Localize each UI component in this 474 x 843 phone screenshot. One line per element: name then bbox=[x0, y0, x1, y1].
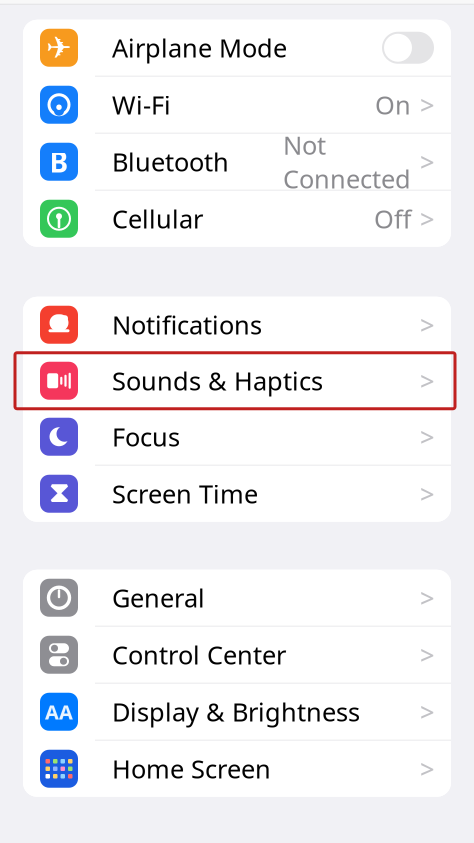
staticText: Sounds & Haptics bbox=[112, 364, 323, 397]
staticText: Bluetooth bbox=[112, 145, 229, 178]
button[interactable]: ⧗ bbox=[23, 466, 451, 522]
staticText: On bbox=[375, 88, 411, 121]
staticText: ✈ bbox=[46, 30, 72, 65]
staticText: > bbox=[420, 695, 434, 728]
staticText: Not Connected bbox=[283, 128, 411, 195]
staticText: AA bbox=[45, 698, 73, 725]
button[interactable]: Cellular bbox=[23, 191, 451, 247]
button[interactable]: Focus bbox=[23, 409, 451, 466]
button[interactable]: General bbox=[23, 570, 451, 627]
staticText: > bbox=[420, 638, 434, 671]
staticText: > bbox=[420, 88, 434, 121]
staticText: > bbox=[420, 752, 434, 785]
button[interactable]: Wi-Fi bbox=[23, 77, 451, 134]
staticText: Display & Brightness bbox=[112, 695, 360, 728]
staticText: > bbox=[420, 581, 434, 614]
staticText: Wi-Fi bbox=[112, 88, 171, 121]
staticText: Notifications bbox=[112, 308, 262, 341]
staticText: Home Screen bbox=[112, 752, 271, 785]
staticText: Focus bbox=[112, 420, 180, 453]
staticText: > bbox=[420, 420, 434, 453]
button[interactable]: Home Screen bbox=[23, 741, 451, 797]
button[interactable]: Notifications bbox=[23, 297, 451, 353]
staticText: > bbox=[420, 477, 434, 510]
button[interactable]: Control Center bbox=[23, 627, 451, 684]
button[interactable]: Sounds & Haptics bbox=[23, 353, 451, 409]
button[interactable]: B bbox=[23, 134, 451, 191]
staticText: Control Center bbox=[112, 638, 286, 671]
staticText: > bbox=[420, 145, 434, 178]
staticText: ⧗ bbox=[49, 480, 69, 507]
staticText: Airplane Mode bbox=[112, 31, 287, 64]
staticText: B bbox=[49, 143, 68, 180]
staticText: > bbox=[420, 364, 434, 397]
staticText: Off bbox=[374, 202, 411, 235]
staticText: General bbox=[112, 581, 205, 614]
staticText: > bbox=[420, 202, 434, 235]
button[interactable]: ✈ bbox=[23, 20, 451, 77]
button[interactable]: AA bbox=[23, 684, 451, 741]
staticText: > bbox=[420, 308, 434, 341]
staticText: Cellular bbox=[112, 202, 203, 235]
staticText: Screen Time bbox=[112, 477, 258, 510]
